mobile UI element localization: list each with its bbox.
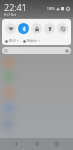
button[interactable]: Back [11,139,21,149]
button[interactable]: Home [32,139,42,149]
button[interactable]: Do not disturb [31,23,42,34]
button[interactable]: Auto-rotate [57,23,68,34]
button[interactable]: Recents [52,139,62,149]
button[interactable]: Settings [65,6,71,12]
staticText: Mobile [27,39,37,43]
staticText: 100% [47,7,55,11]
button[interactable]: Mobile [22,39,41,43]
staticText: Fri 7 Oct [4,13,16,17]
button[interactable]: Bluetooth [18,23,29,34]
button[interactable]: Wi-Fi [5,23,16,34]
staticText: Wi-Fi [9,39,16,43]
button[interactable]: Search [2,47,71,54]
button[interactable]: Wi-Fi [4,39,20,43]
staticText: 22:41 [4,1,27,13]
button[interactable]: Flashlight [44,23,55,34]
